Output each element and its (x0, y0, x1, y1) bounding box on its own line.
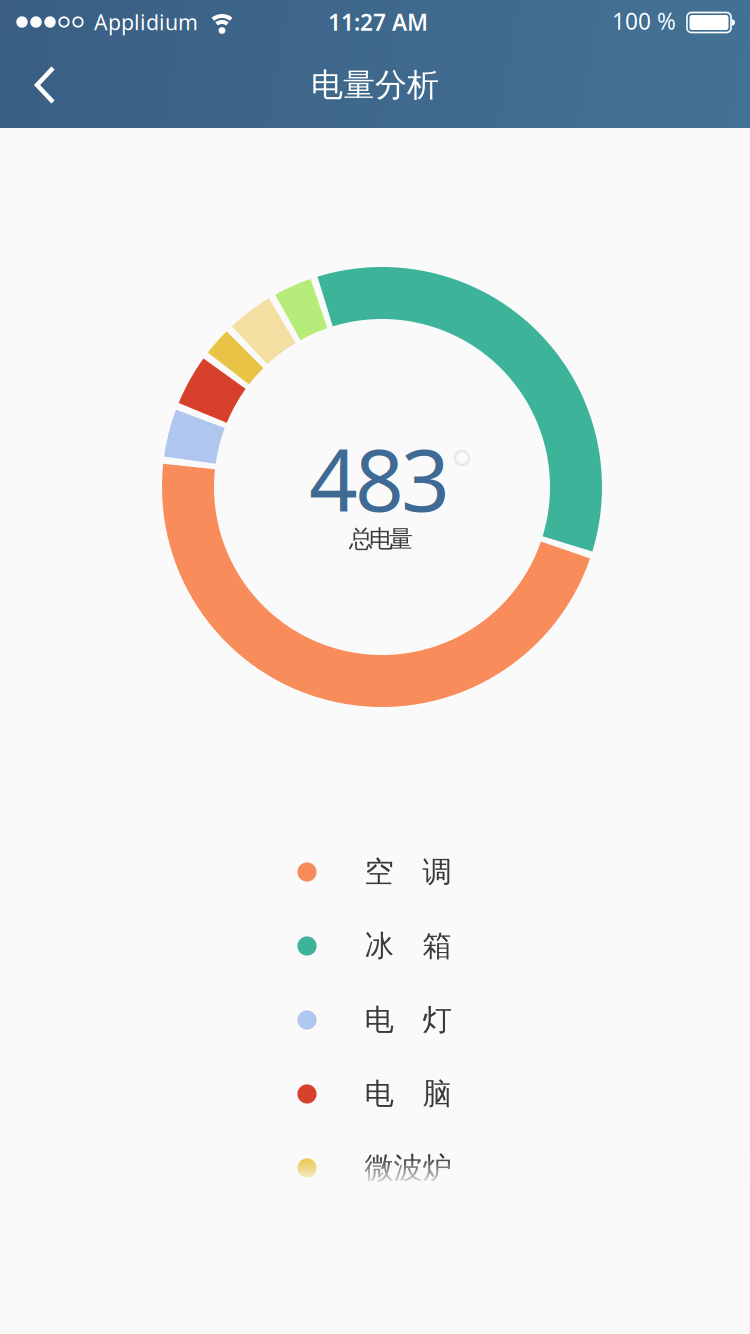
staticText: 100 % (612, 6, 676, 36)
staticText: 电 脑 (364, 1076, 451, 1112)
staticText: 483 (309, 422, 450, 535)
staticText: 11:27 AM (328, 7, 428, 37)
button[interactable] (0, 40, 88, 128)
staticText: 电 灯 (364, 1002, 451, 1038)
staticText: 电量分析 (311, 65, 439, 105)
staticText: 微波炉 (364, 1150, 451, 1186)
staticText: 总电量 (349, 524, 413, 554)
staticText: 冰 箱 (364, 928, 451, 964)
staticText: 空 调 (364, 854, 451, 890)
staticText: Applidium (94, 8, 198, 36)
